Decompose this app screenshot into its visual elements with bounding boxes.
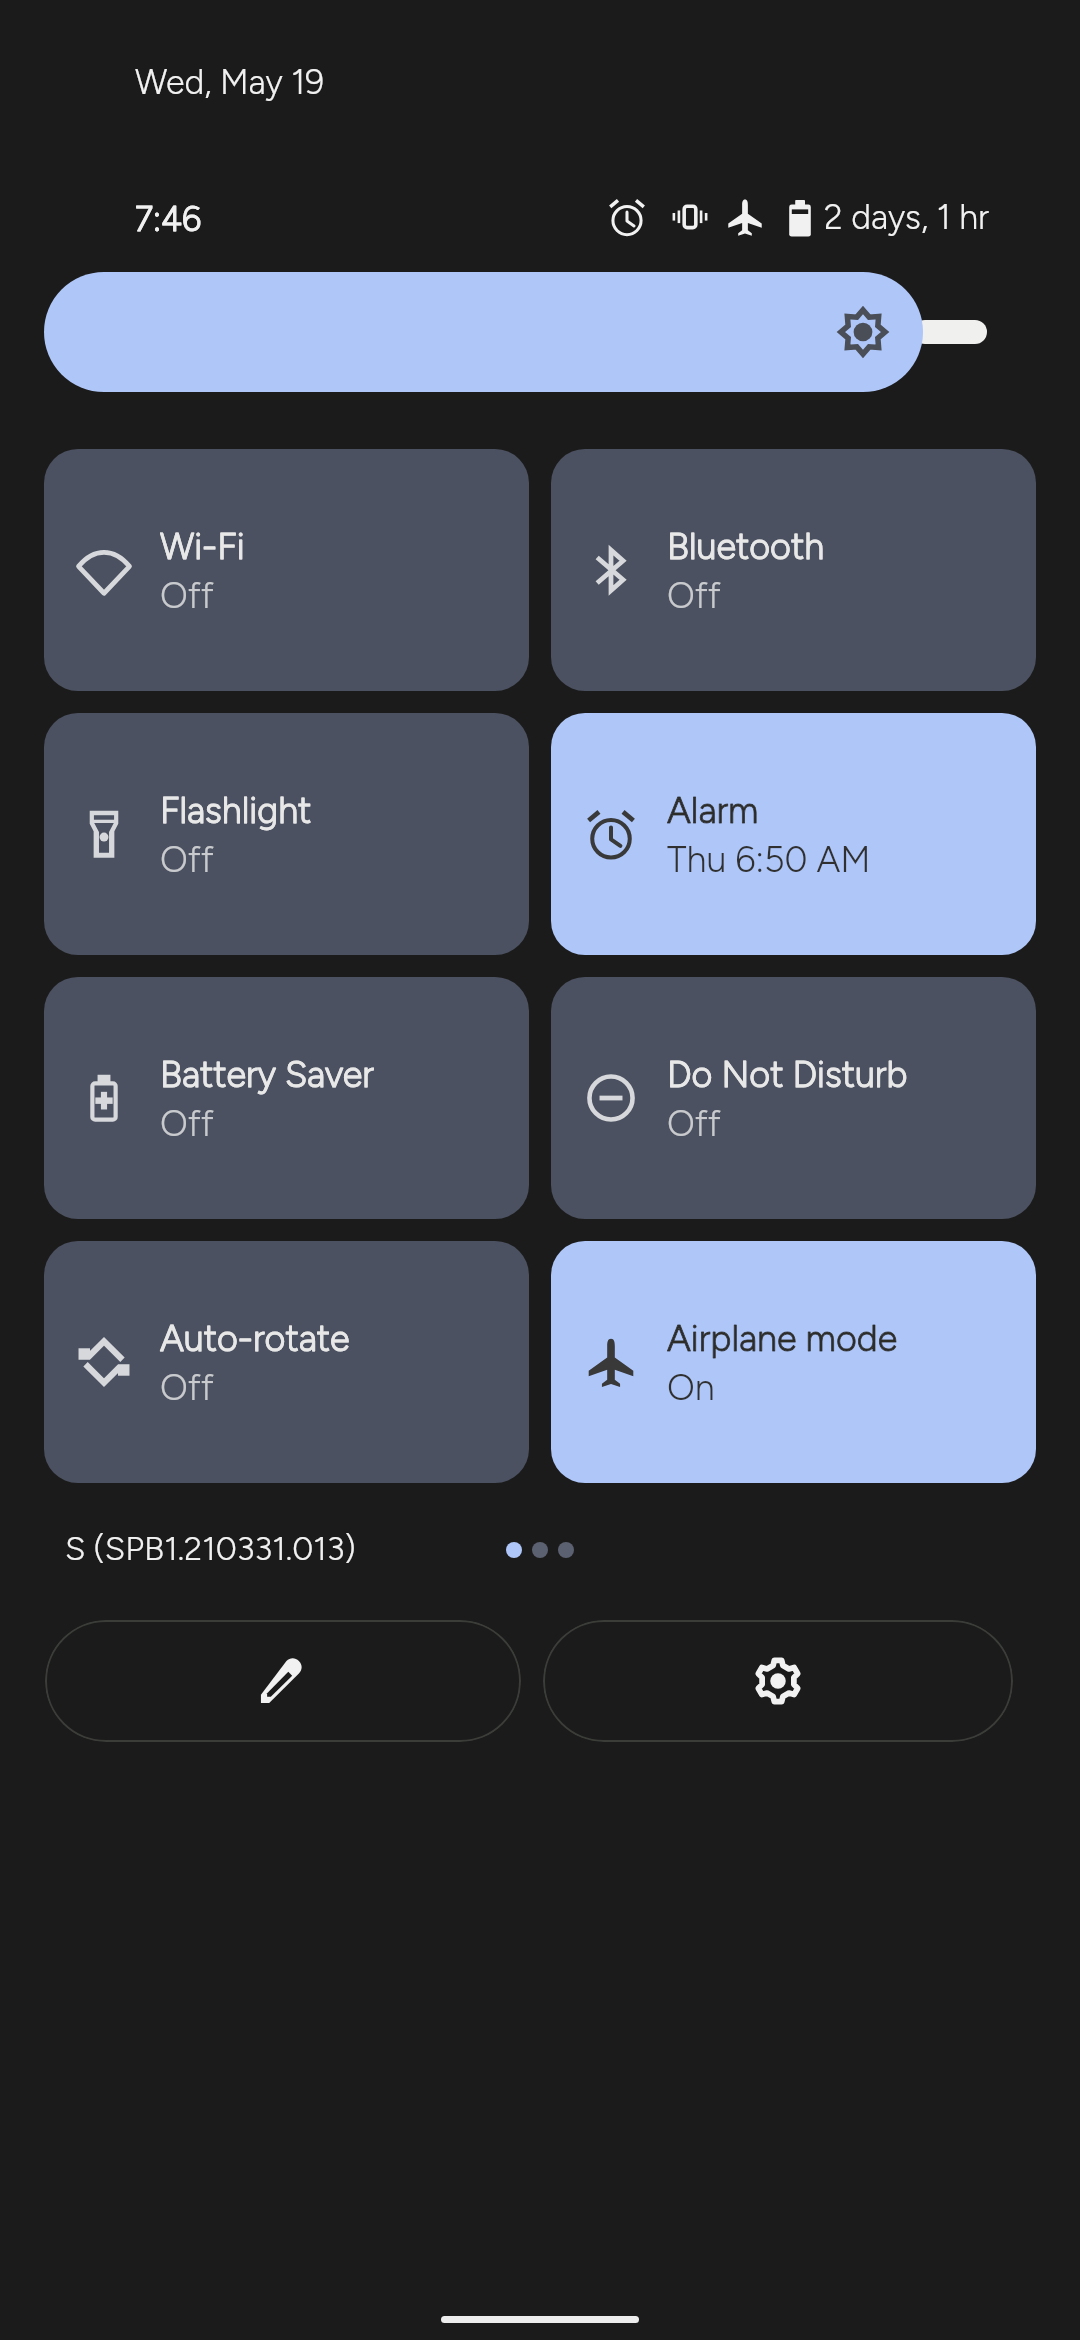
button[interactable]: Brightness [44,272,1036,392]
staticText: Airplane mode [667,1317,898,1360]
staticText: 7:46 [135,199,201,240]
button[interactable]: Do Not Disturb [551,977,1036,1219]
staticText: Bluetooth [667,525,825,568]
staticText: S (SPB1.210331.013) [65,1529,356,1569]
staticText: Airplane mode [667,1317,898,1360]
button[interactable]: Airplane mode [551,1241,1036,1483]
button[interactable]: Settings [543,1620,1013,1742]
staticText: Alarm [667,789,759,832]
button[interactable]: Alarm [551,713,1036,955]
button[interactable]: Battery Saver [44,977,529,1219]
button[interactable]: Bluetooth [551,449,1036,691]
button[interactable]: Auto-rotate [44,1241,529,1483]
staticText: Off [160,838,214,881]
staticText: Thu 6:50 AM [667,838,871,881]
staticText: Bluetooth [667,525,825,568]
staticText: Off [667,574,721,617]
button[interactable]: Wi-Fi [44,449,529,691]
staticText: Do Not Disturb [667,1053,908,1096]
staticText: Flashlight [160,789,312,832]
staticText: Do Not Disturb [667,1053,908,1096]
staticText: 7:46 [135,199,201,240]
staticText: On [667,1366,715,1409]
staticText: Battery Saver [160,1053,374,1096]
staticText: 2 days, 1 hr [824,197,989,238]
staticText: Wi-Fi [160,525,245,568]
button[interactable]: Edit tiles [45,1620,521,1742]
staticText: Wi-Fi [160,525,245,568]
staticText: Off [160,574,214,617]
staticText: Auto-rotate [160,1317,350,1360]
staticText: Auto-rotate [160,1317,350,1360]
staticText: Battery Saver [160,1053,374,1096]
staticText: Off [667,1102,721,1145]
staticText: Off [160,1102,214,1145]
staticText: Wed, May 19 [135,62,325,103]
staticText: Off [160,1366,214,1409]
button[interactable]: Flashlight [44,713,529,955]
staticText: Alarm [667,789,759,832]
staticText: Flashlight [160,789,312,832]
